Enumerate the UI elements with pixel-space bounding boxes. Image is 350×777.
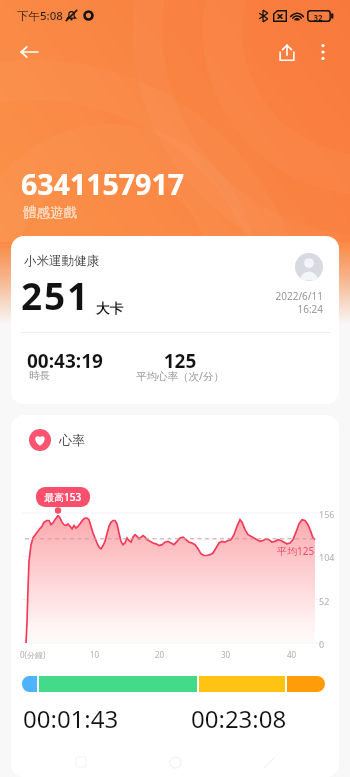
staticText: 52 — [319, 595, 330, 607]
staticText: 10 — [90, 649, 100, 660]
staticText: 0 — [319, 638, 325, 650]
staticText: 251 — [21, 270, 90, 320]
staticText: 00:23:08 — [191, 702, 287, 735]
staticText: 平均125 — [277, 544, 315, 558]
staticText: 心率 — [59, 432, 85, 448]
staticText: 下午5:08 — [17, 8, 63, 24]
staticText: 時長 — [29, 369, 50, 382]
button[interactable]: Share — [270, 35, 304, 69]
staticText: 16:24 — [241, 302, 323, 316]
staticText: 104 — [319, 551, 335, 563]
staticText: 00:01:43 — [23, 702, 119, 735]
staticText: 最高153 — [44, 490, 82, 504]
staticText: 32 — [307, 12, 329, 23]
staticText: 125 — [158, 348, 202, 374]
staticText: 00:43:19 — [27, 348, 103, 374]
staticText: 平均心率（次/分） — [128, 369, 232, 383]
staticText: 大卡 — [96, 300, 123, 317]
staticText: 小米運動健康 — [24, 253, 99, 269]
staticText: 2022/6/11 — [241, 289, 323, 303]
staticText: 6341157917 — [21, 165, 185, 204]
staticText: 30 — [221, 649, 231, 660]
staticText: 40 — [287, 649, 297, 660]
staticText: 20 — [155, 649, 165, 660]
button[interactable]: Back — [12, 35, 46, 69]
staticText: 體感遊戲 — [23, 204, 77, 221]
staticText: 0(分鐘) — [20, 649, 46, 660]
button[interactable]: More options — [306, 35, 340, 69]
button[interactable]: Account — [295, 253, 323, 281]
staticText: 156 — [319, 508, 335, 520]
